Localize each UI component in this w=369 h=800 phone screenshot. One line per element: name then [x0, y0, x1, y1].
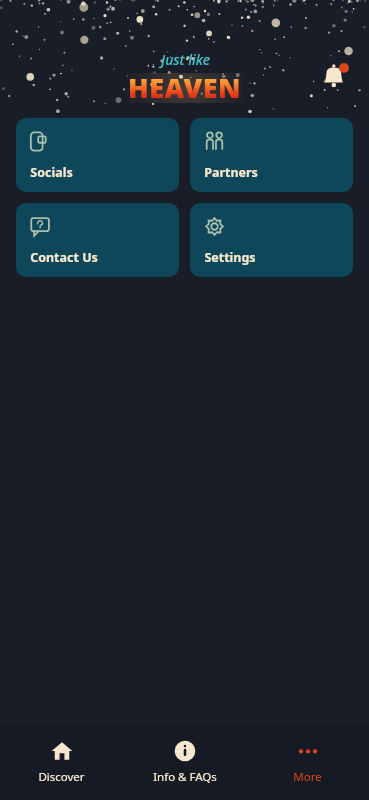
button[interactable]: Contact Us	[16, 203, 179, 277]
staticText: Socials	[30, 164, 73, 181]
button[interactable]: Partners	[190, 118, 353, 192]
button[interactable]: More	[246, 724, 369, 785]
staticText: Contact Us	[30, 249, 98, 266]
staticText: More	[293, 769, 322, 785]
button[interactable]: Discover	[0, 724, 123, 785]
staticText: Partners	[204, 164, 258, 181]
button[interactable]: Info & FAQs	[123, 724, 246, 785]
staticText: Discover	[38, 769, 85, 785]
button[interactable]: Notifications	[315, 56, 355, 96]
staticText: Just like	[161, 50, 210, 69]
button[interactable]: Socials	[16, 118, 179, 192]
button[interactable]: Settings	[190, 203, 353, 277]
staticText: Info & FAQs	[153, 769, 217, 785]
staticText: HEAVEN	[128, 69, 242, 106]
staticText: Settings	[204, 249, 256, 266]
